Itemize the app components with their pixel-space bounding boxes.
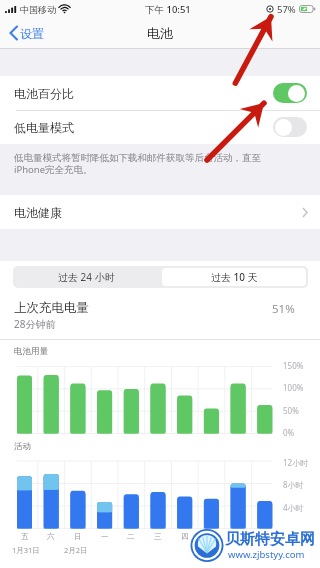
staticText: 150% <box>283 360 304 371</box>
staticText: 上次充电电量 <box>14 300 89 316</box>
staticText: 电池健康 <box>14 205 62 220</box>
staticText: 二 <box>127 532 135 541</box>
button[interactable]: 设置 <box>0 25 50 41</box>
staticText: 日 <box>74 532 82 541</box>
other: 电池百分比 <box>273 83 307 103</box>
staticText: 活动 <box>14 441 31 452</box>
staticText: 2月2日 <box>64 545 88 555</box>
staticText: 51% <box>272 301 295 317</box>
staticText: 电池 <box>147 25 173 41</box>
button[interactable]: 电池百分比 <box>0 76 320 110</box>
staticText: 8小时 <box>283 479 304 490</box>
staticText: 电池百分比 <box>14 86 74 101</box>
staticText: 贝斯特安卓网 <box>225 530 315 549</box>
staticText: 五 <box>21 532 29 541</box>
staticText: www.zjbstyy.com <box>228 548 305 561</box>
staticText: 50% <box>283 405 299 416</box>
staticText: 1月31日 <box>12 545 40 555</box>
button[interactable]: 低电量模式 <box>0 110 320 144</box>
staticText: 低电量模式 <box>14 120 74 135</box>
staticText: 57% <box>277 3 296 16</box>
staticText: 三 <box>154 532 162 541</box>
button[interactable]: 过去 24 小时 <box>13 266 160 288</box>
staticText: 一 <box>101 532 109 541</box>
staticText: 六 <box>47 532 55 541</box>
staticText: 四 <box>181 532 189 541</box>
other: 低电量模式 <box>273 117 307 137</box>
button[interactable]: 电池健康 <box>0 195 320 229</box>
staticText: 中国移动 <box>20 4 56 15</box>
staticText: 低电量模式将暂时降低如下载和邮件获取等后台活动，直至 iPhone完全充电。 <box>14 152 261 176</box>
staticText: 0% <box>283 427 295 438</box>
staticText: 过去 10 天 <box>211 270 258 284</box>
staticText: 下午 10:51 <box>145 3 191 16</box>
staticText: 28分钟前 <box>14 317 56 331</box>
staticText: 4小时 <box>283 502 304 513</box>
staticText: 过去 24 小时 <box>58 270 115 284</box>
staticText: 12小时 <box>283 457 309 468</box>
button[interactable]: 过去 10 天 <box>162 268 306 286</box>
staticText: 电池用量 <box>14 346 48 357</box>
staticText: 设置 <box>20 26 44 41</box>
staticText: 100% <box>283 382 304 393</box>
